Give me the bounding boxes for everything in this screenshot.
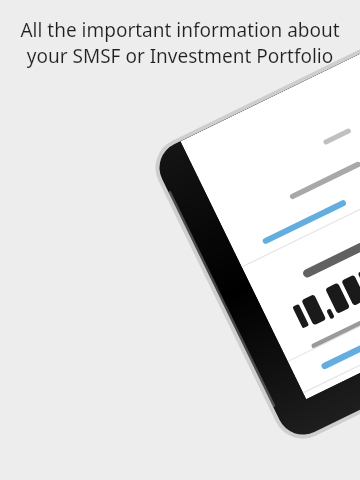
staticText: All the important information about your… <box>20 17 340 69</box>
button[interactable]: Tablet app preview <box>0 0 360 480</box>
